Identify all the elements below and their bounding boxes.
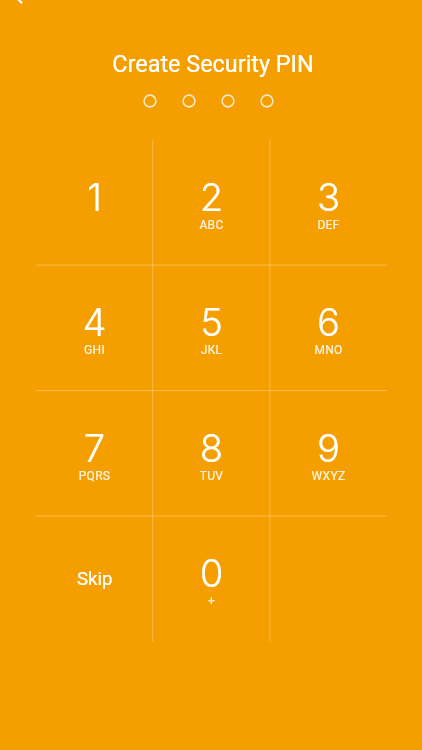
staticText: 7 [36, 425, 153, 471]
staticText: ABC [153, 218, 270, 232]
button[interactable]: Back [0, 0, 43, 20]
staticText: 2 [153, 174, 270, 220]
staticText: Skip [77, 568, 113, 590]
button[interactable]: 3 [270, 140, 387, 266]
staticText: 0 [153, 550, 270, 596]
button[interactable]: 4 [36, 265, 153, 391]
button[interactable]: 9 [270, 391, 387, 517]
staticText: + [153, 594, 270, 608]
button[interactable]: 6 [270, 265, 387, 391]
staticText: 8 [153, 425, 270, 471]
staticText: 6 [270, 299, 387, 345]
button[interactable]: PIN digit 2 [182, 94, 196, 108]
staticText: 4 [36, 299, 153, 345]
button[interactable]: 1 [36, 140, 153, 266]
staticText: 9 [270, 425, 387, 471]
button[interactable]: 2 [153, 140, 270, 266]
staticText: MNO [270, 343, 387, 357]
staticText: Create Security PIN [2, 50, 422, 77]
staticText: GHI [36, 343, 153, 357]
staticText: 3 [270, 174, 387, 220]
button[interactable]: 8 [153, 391, 270, 517]
staticText: 5 [153, 299, 270, 345]
staticText: WXYZ [270, 469, 387, 483]
button[interactable]: 0 [153, 516, 270, 642]
staticText: 1 [36, 174, 153, 220]
button[interactable]: Skip [36, 516, 153, 642]
staticText: TUV [153, 469, 270, 483]
staticText: DEF [270, 218, 387, 232]
button[interactable]: PIN digit 4 [260, 94, 274, 108]
button[interactable]: 7 [36, 391, 153, 517]
button[interactable]: PIN digit 1 [143, 94, 157, 108]
button[interactable]: 5 [153, 265, 270, 391]
staticText: PQRS [36, 469, 153, 483]
staticText: JKL [153, 343, 270, 357]
button[interactable]: PIN digit 3 [221, 94, 235, 108]
